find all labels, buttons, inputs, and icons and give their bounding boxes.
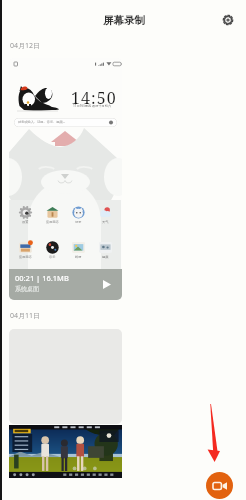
staticText: 04月12日 xyxy=(10,41,41,51)
staticText: 应用商店 xyxy=(46,220,59,224)
staticText: 系统桌面 xyxy=(15,285,39,293)
staticText: 屏幕录制 xyxy=(103,14,145,27)
staticText: 应用商店 xyxy=(19,255,32,259)
staticText: 11月9日周四 农历十月初六 xyxy=(73,104,112,108)
staticText: 记录 xyxy=(75,220,82,224)
button[interactable]: 14:50 xyxy=(9,58,122,300)
staticText: 相册 xyxy=(75,255,82,259)
staticText: 00:21 | 16.1MB xyxy=(15,273,69,283)
staticText: 视频 xyxy=(102,255,109,259)
button[interactable] xyxy=(9,425,122,478)
button[interactable]: Start recording xyxy=(206,472,233,499)
staticText: 14:50 xyxy=(71,87,117,109)
staticText: 04月11日 xyxy=(10,311,41,321)
button[interactable]: Settings xyxy=(218,10,238,30)
staticText: 天气 xyxy=(102,220,109,224)
staticText: 设置 xyxy=(22,220,29,224)
staticText: 音乐 xyxy=(49,255,56,259)
staticText: 搜索或输入、话题、音乐、视频… xyxy=(18,120,66,124)
